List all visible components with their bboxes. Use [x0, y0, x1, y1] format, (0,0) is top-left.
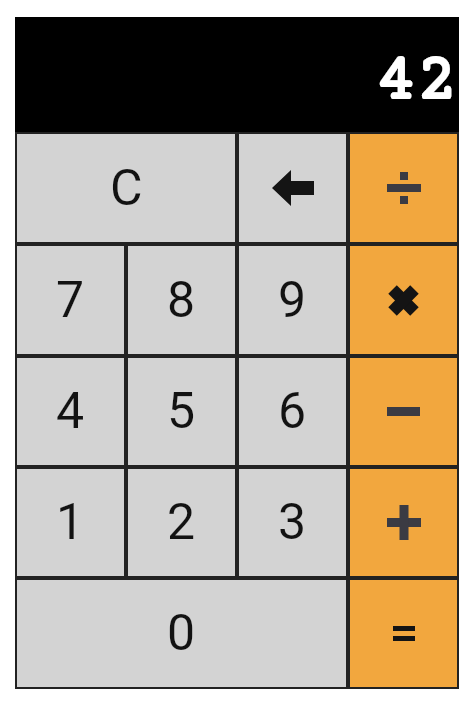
button[interactable]	[237, 132, 348, 244]
button[interactable]: C	[15, 132, 237, 244]
staticText: 42	[376, 45, 458, 121]
button[interactable]	[348, 244, 459, 356]
button[interactable]: 0	[15, 578, 348, 689]
staticText: 3	[278, 493, 307, 552]
button[interactable]: 2	[126, 467, 237, 578]
button[interactable]: 1	[15, 467, 126, 578]
staticText: 2	[167, 493, 196, 552]
button[interactable]: 3	[237, 467, 348, 578]
button[interactable]	[348, 467, 459, 578]
staticText: 6	[278, 382, 307, 441]
button[interactable]: 5	[126, 356, 237, 467]
button[interactable]	[348, 578, 459, 689]
button[interactable]	[348, 132, 459, 244]
staticText: 5	[167, 382, 196, 441]
staticText: 0	[167, 604, 196, 663]
staticText: 9	[278, 271, 307, 330]
button[interactable]: 4	[15, 356, 126, 467]
button[interactable]: 7	[15, 244, 126, 356]
button[interactable]: 6	[237, 356, 348, 467]
button[interactable]: 9	[237, 244, 348, 356]
staticText: 7	[56, 271, 85, 330]
button[interactable]	[348, 356, 459, 467]
staticText: 1	[56, 493, 85, 552]
staticText: 8	[167, 271, 196, 330]
button[interactable]: 8	[126, 244, 237, 356]
staticText: C	[110, 159, 143, 218]
staticText: 4	[56, 382, 85, 441]
